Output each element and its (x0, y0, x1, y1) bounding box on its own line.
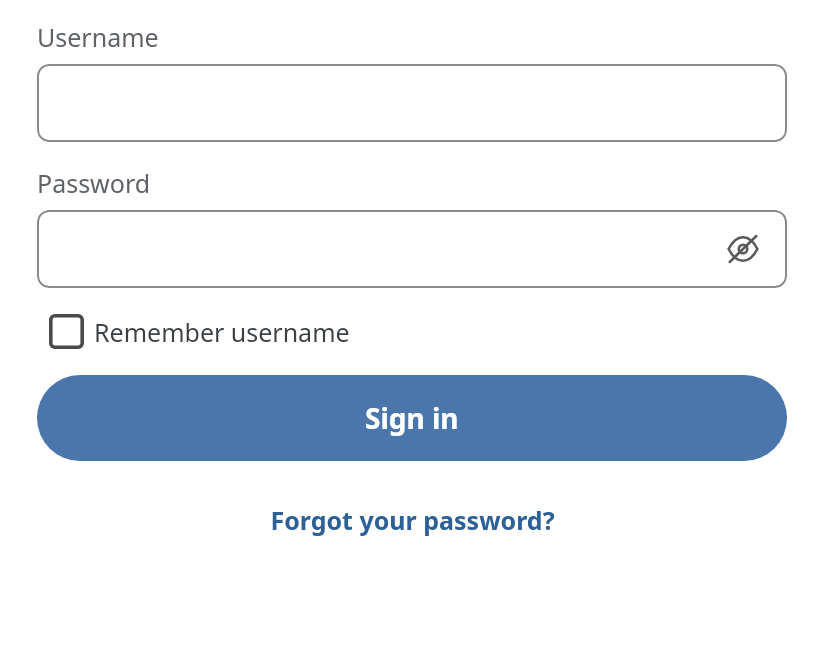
staticText: Password (37, 166, 151, 200)
staticText: Sign in (365, 399, 459, 437)
button[interactable]: Show password (721, 227, 765, 271)
button[interactable]: Show password (37, 210, 787, 288)
staticText: Remember username (94, 315, 350, 349)
staticText: Forgot your password? (270, 503, 555, 537)
staticText: Username (37, 20, 159, 54)
button[interactable] (37, 64, 787, 142)
button[interactable]: Sign in (37, 375, 787, 461)
button[interactable]: Forgot your password? (262, 499, 563, 541)
button[interactable]: Remember username (47, 310, 352, 353)
